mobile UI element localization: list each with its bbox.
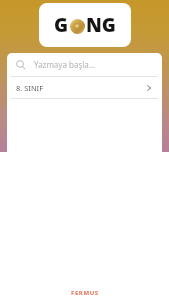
other: Search (16, 60, 26, 70)
staticText: FERMUS (71, 289, 99, 297)
button[interactable]: GONG logo (39, 3, 131, 47)
other: Open 8. SINIF (145, 84, 153, 92)
staticText: 8. SINIF (16, 83, 44, 93)
staticText: G (54, 12, 69, 38)
staticText: NG (86, 12, 116, 38)
staticText: Yazmaya başla... (34, 59, 96, 70)
button[interactable]: 8. SINIF (7, 77, 162, 98)
button[interactable]: Search (7, 53, 162, 76)
